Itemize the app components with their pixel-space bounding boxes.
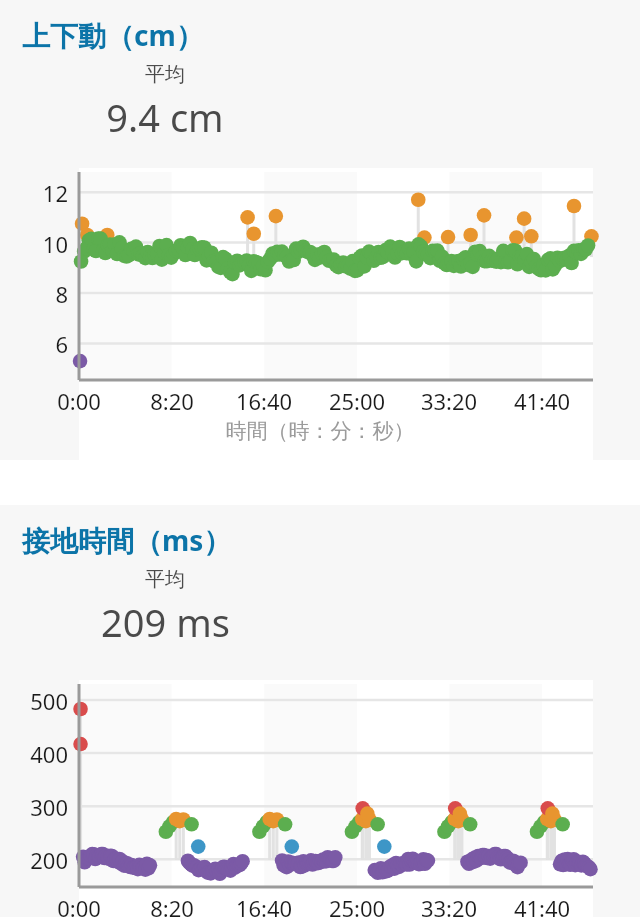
staticText: 10 [0,229,68,259]
staticText: 33:20 [404,386,494,416]
button[interactable]: 500 [0,680,640,917]
staticText: 上下動（cm） [22,16,204,54]
staticText: 12 [0,178,68,208]
button[interactable]: 12 [0,168,640,460]
staticText: 41:40 [497,893,587,917]
staticText: 8 [0,279,68,309]
staticText: 500 [0,686,68,716]
staticText: 0:00 [34,893,124,917]
staticText: 400 [0,739,68,769]
button[interactable]: 上下動（cm） [0,0,640,168]
staticText: 200 [0,845,68,875]
staticText: 33:20 [404,893,494,917]
staticText: 時間（時：分：秒） [0,418,640,444]
staticText: 16:40 [219,386,309,416]
staticText: 0:00 [34,386,124,416]
staticText: 300 [0,792,68,822]
staticText: 平均 [145,567,185,592]
staticText: 接地時間（ms） [22,521,232,559]
staticText: 25:00 [312,893,402,917]
staticText: 209 ms [101,596,230,648]
staticText: 16:40 [219,893,309,917]
staticText: 8:20 [127,893,217,917]
button[interactable]: 接地時間（ms） [0,505,640,680]
staticText: 平均 [145,62,185,87]
staticText: 8:20 [127,386,217,416]
staticText: 9.4 cm [106,91,224,143]
staticText: 41:40 [497,386,587,416]
staticText: 25:00 [312,386,402,416]
staticText: 6 [0,329,68,359]
